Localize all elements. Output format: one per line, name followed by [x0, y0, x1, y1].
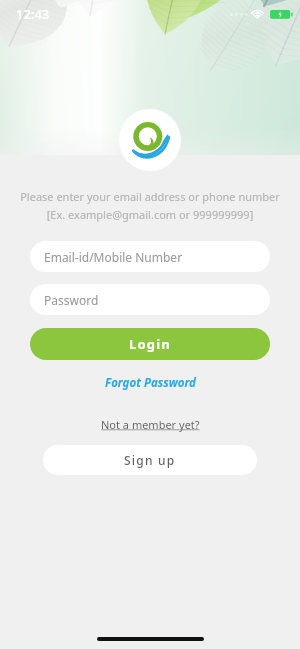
button[interactable]: Login: [30, 328, 270, 360]
button[interactable]: Password: [30, 284, 270, 315]
staticText: Not a member yet?: [101, 417, 200, 432]
staticText: Sign up: [124, 452, 176, 468]
staticText: Password: [44, 292, 99, 308]
staticText: 12:43: [16, 5, 50, 23]
button[interactable]: Not a member yet?: [93, 415, 208, 434]
staticText: [Ex. example@gmail.com or 999999999]: [0, 207, 300, 222]
staticText: Please enter your email address or phone…: [0, 189, 300, 204]
button[interactable]: Email-id/Mobile Number: [30, 241, 270, 272]
staticText: Login: [129, 335, 171, 353]
button[interactable]: Sign up: [43, 445, 257, 475]
staticText: Forgot Password: [105, 375, 196, 391]
button[interactable]: Forgot Password: [97, 373, 204, 393]
staticText: Email-id/Mobile Number: [44, 249, 183, 265]
